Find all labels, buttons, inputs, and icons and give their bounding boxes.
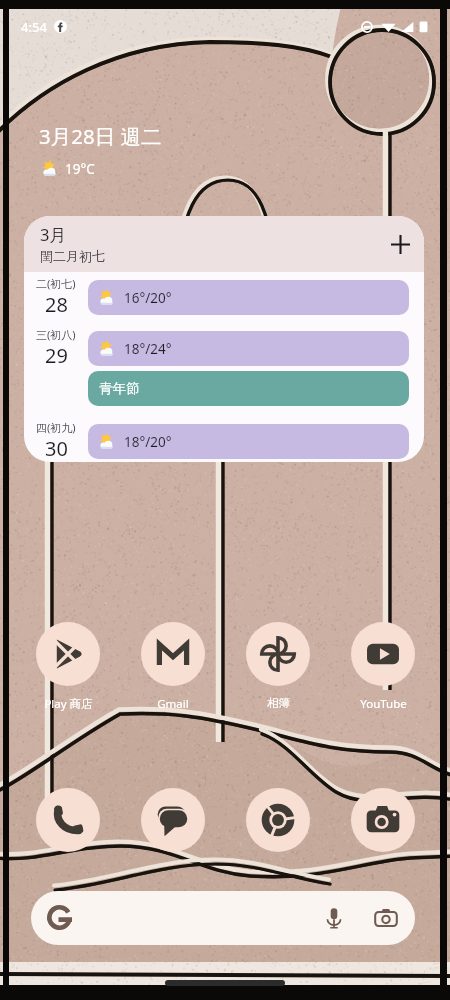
staticText: 青年節 (99, 380, 140, 397)
button[interactable]: 相簿 (226, 622, 330, 710)
staticText: 19°C (65, 160, 95, 178)
staticText: 三(初八) (36, 327, 76, 342)
button[interactable]: Gmail (121, 622, 225, 712)
button[interactable]: Phone (16, 788, 120, 852)
button[interactable]: 二(初七) (24, 276, 88, 318)
staticText: 相簿 (267, 696, 290, 710)
staticText: YouTube (360, 696, 407, 712)
staticText: 30 (45, 435, 68, 462)
button[interactable]: 青年節 (88, 371, 409, 406)
button[interactable]: Messages (121, 788, 225, 852)
staticText: Gmail (157, 696, 189, 712)
staticText: 18°/24° (124, 340, 172, 358)
staticText: 二(初七) (36, 276, 76, 291)
button[interactable]: Voice search (31, 891, 415, 945)
button[interactable]: YouTube (331, 622, 435, 712)
staticText: 3月28日 週二 (39, 122, 162, 150)
button[interactable]: 18°/24° (88, 331, 409, 366)
button[interactable]: 18°/20° (88, 424, 409, 459)
staticText: Play 商店 (44, 696, 93, 712)
staticText: 18°/20° (124, 433, 172, 451)
button[interactable]: Play 商店 (16, 622, 120, 712)
button[interactable]: Add event (383, 227, 417, 261)
button[interactable]: 三(初八) (24, 327, 88, 369)
button[interactable]: Chrome (226, 788, 330, 852)
button[interactable]: Voice search (319, 903, 349, 933)
staticText: 3月 (40, 223, 66, 246)
button[interactable]: 四(初九) (24, 420, 88, 462)
staticText: 29 (45, 342, 68, 369)
button[interactable]: 3月 (24, 216, 424, 272)
staticText: 28 (45, 291, 68, 318)
staticText: 閏二月初七 (40, 248, 105, 264)
staticText: 4:54 (21, 18, 47, 36)
button[interactable]: 16°/20° (88, 280, 409, 315)
button[interactable]: Camera (331, 788, 435, 852)
staticText: 四(初九) (36, 420, 76, 435)
staticText: 16°/20° (124, 289, 172, 307)
button[interactable]: Google Lens (371, 903, 401, 933)
